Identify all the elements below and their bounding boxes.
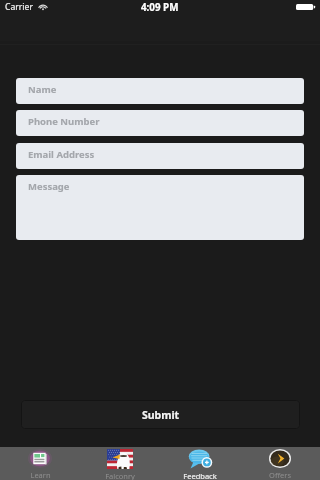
button[interactable]: Offers: [240, 447, 320, 480]
button[interactable]: Message: [16, 175, 304, 240]
staticText: Email Address: [28, 148, 95, 161]
button[interactable]: Name: [16, 78, 304, 104]
button[interactable]: Email Address: [16, 143, 304, 169]
button[interactable]: Submit: [21, 400, 300, 429]
button[interactable]: Feedback: [160, 447, 240, 480]
staticText: 4:09 PM: [141, 1, 179, 14]
button[interactable]: Learn: [0, 447, 80, 480]
other: Battery: [296, 4, 315, 10]
staticText: Name: [28, 83, 57, 96]
button[interactable]: Phone Number: [16, 110, 304, 136]
staticText: Carrier: [5, 1, 33, 13]
staticText: Message: [28, 180, 70, 193]
button[interactable]: Falconry: [80, 447, 160, 480]
staticText: Offers: [269, 470, 291, 480]
staticText: Phone Number: [28, 115, 100, 128]
staticText: Feedback: [183, 471, 217, 480]
staticText: Falconry: [105, 471, 135, 480]
staticText: Submit: [142, 408, 180, 422]
staticText: Learn: [30, 470, 51, 480]
